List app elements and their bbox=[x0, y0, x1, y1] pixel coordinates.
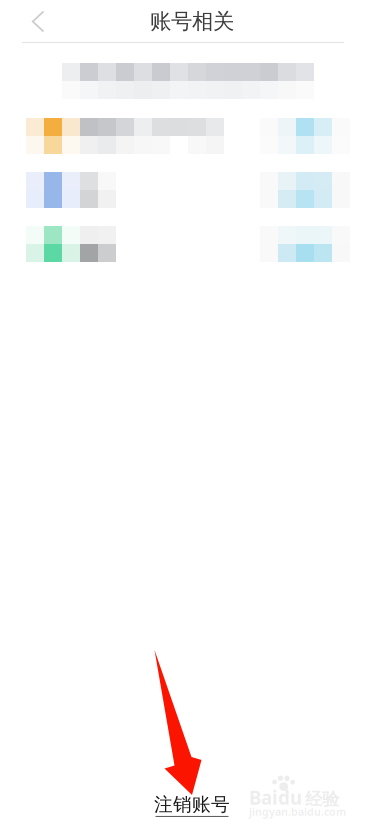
staticText: 经验 bbox=[305, 789, 339, 810]
button[interactable]: 注销账号 bbox=[154, 793, 230, 817]
staticText: jingyan.baidu.com bbox=[249, 804, 346, 819]
staticText: Baidu bbox=[249, 785, 302, 810]
staticText: 注销账号 bbox=[154, 793, 230, 816]
button[interactable]: Back bbox=[22, 0, 54, 43]
staticText: 账号相关 bbox=[150, 8, 234, 35]
